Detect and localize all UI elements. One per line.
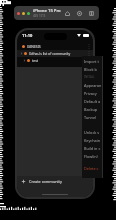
button[interactable]: Block b	[82, 65, 102, 73]
staticText: Unlock s	[84, 130, 100, 135]
button[interactable]: Delete c	[82, 164, 102, 172]
button[interactable]: Unlock s	[82, 128, 102, 136]
button[interactable]: Default a	[82, 97, 102, 105]
staticText: Build in c	[84, 146, 101, 151]
staticText: test	[32, 58, 38, 63]
button[interactable]: Rotate	[75, 9, 83, 17]
button[interactable]: Create community	[21, 179, 62, 184]
staticText: Appearan	[84, 83, 102, 88]
staticText: Géhau's list of community	[29, 51, 71, 56]
staticText: Privacy	[84, 91, 97, 96]
staticText: Default a	[84, 99, 101, 104]
button[interactable]: Appearan	[82, 81, 102, 89]
staticText: Flow(in)	[84, 154, 98, 159]
button[interactable]: Screenshot	[87, 9, 95, 17]
button[interactable]: Keychain	[82, 136, 102, 144]
staticText: Keychain	[84, 138, 100, 143]
button[interactable]: Backup	[82, 105, 102, 113]
staticText: Block b	[84, 67, 97, 72]
button[interactable]: Home	[63, 9, 71, 17]
button[interactable]: test	[17, 57, 93, 64]
button[interactable]: Géhau's list of community	[17, 50, 93, 57]
button[interactable]: Build in c	[82, 144, 102, 152]
staticText: Tunnel	[84, 115, 97, 120]
button[interactable]: Tunnel	[82, 113, 102, 121]
button[interactable]: Privacy	[82, 89, 102, 97]
button[interactable]: Import t	[82, 57, 102, 65]
staticText: Delete c	[84, 166, 99, 171]
button[interactable]: Flow(in)	[82, 152, 102, 160]
staticText: Import t	[84, 59, 99, 64]
staticText: GENESIS	[27, 44, 41, 49]
staticText: Create community	[29, 179, 62, 184]
staticText: iPhone 15 Pro	[33, 8, 61, 14]
button[interactable]: GENESIS	[17, 43, 93, 50]
staticText: INSTALL	[84, 75, 95, 79]
staticText: Backup	[84, 107, 98, 112]
staticText: iOS 17.5	[33, 14, 46, 18]
staticText: 11:10	[22, 33, 33, 38]
